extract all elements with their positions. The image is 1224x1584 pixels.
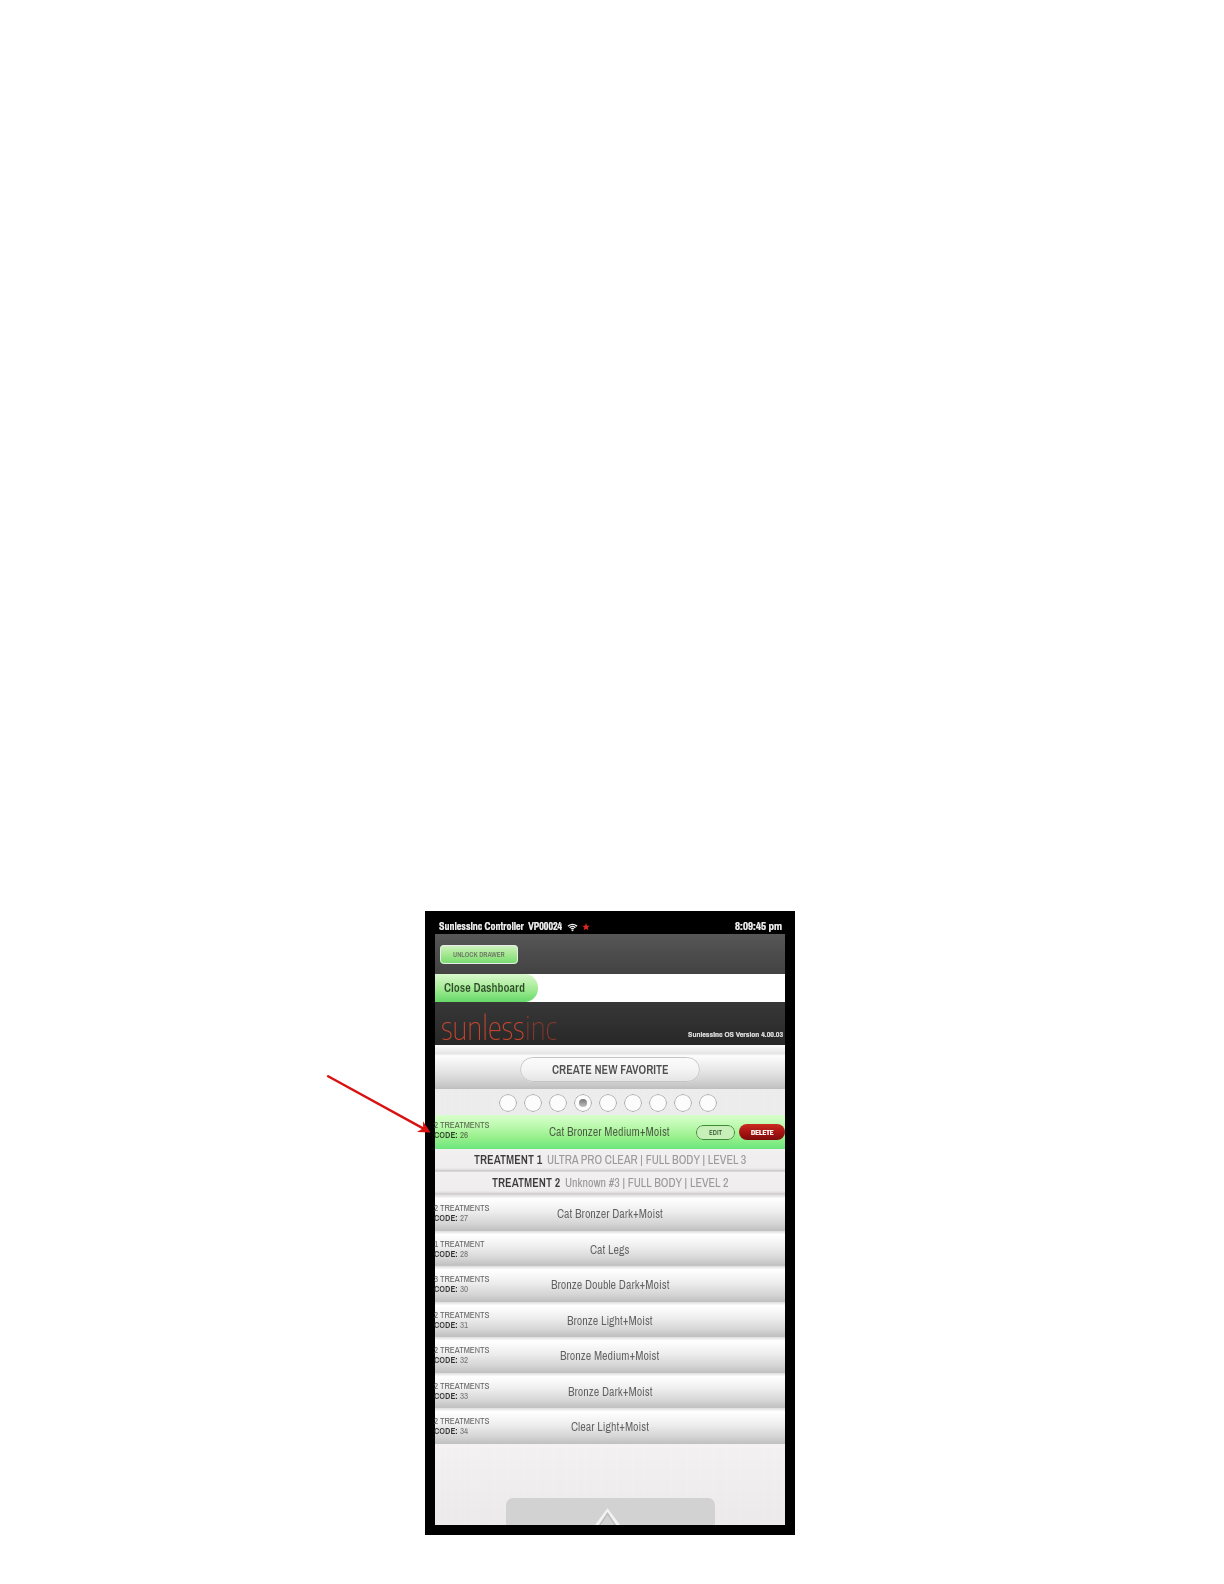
button[interactable]: CREATE NEW FAVORITE [520,1057,700,1082]
staticText: 32 [460,1354,469,1366]
staticText: CODE: [434,1248,460,1260]
button[interactable]: Slot 3 [549,1094,567,1112]
button[interactable]: Slot 7 [649,1094,667,1112]
staticText: CODE: [434,1129,460,1141]
staticText: 2 TREATMENTS [434,1202,490,1214]
staticText: 2 TREATMENTS [434,1380,490,1392]
staticText: EDIT [709,1128,723,1137]
staticText: CODE: [434,1390,460,1402]
button[interactable]: Slot 9 [699,1094,717,1112]
staticText: 30 [460,1283,469,1295]
staticText: CODE: [434,1212,460,1224]
button[interactable]: EDIT [696,1125,735,1140]
button[interactable]: 2 TREATMENTS [435,1373,785,1408]
staticText: Clear Light+Moist [571,1419,649,1435]
staticText: SunlessInc Controller VP00024 [439,920,563,933]
button[interactable]: 2 TREATMENTS [435,1115,785,1149]
staticText: DELETE [751,1128,774,1137]
staticText: Unknown #3 | FULL BODY | LEVEL 2 [565,1175,729,1191]
staticText: 2 TREATMENTS [434,1119,490,1131]
staticText: sunless [441,1007,525,1047]
button[interactable]: 2 TREATMENTS [435,1337,785,1373]
staticText: CODE: [434,1283,460,1295]
staticText: TREATMENT 2 [492,1175,561,1191]
button[interactable]: Slot 6 [624,1094,642,1112]
button[interactable]: Home [506,1498,715,1525]
staticText: Cat Bronzer Dark+Moist [557,1206,663,1222]
staticText: inc [525,1007,557,1047]
staticText: SunlessInc OS Version 4.00.03 [688,1029,784,1040]
staticText: 28 [460,1248,469,1260]
button[interactable]: TREATMENT 1 [435,1149,785,1172]
button[interactable]: Close Dashboard [435,974,538,1002]
button[interactable]: Slot 2 [524,1094,542,1112]
button[interactable]: 1 TREATMENT [435,1231,785,1266]
staticText: CREATE NEW FAVORITE [552,1062,669,1078]
staticText: Bronze Dark+Moist [568,1384,653,1400]
button[interactable]: DELETE [739,1124,785,1140]
button[interactable]: Slot 5 [599,1094,617,1112]
staticText: 26 [460,1129,469,1141]
staticText: 2 TREATMENTS [434,1309,490,1321]
staticText: 3 TREATMENTS [434,1273,490,1285]
staticText: Cat Bronzer Medium+Moist [549,1124,670,1140]
button[interactable]: Slot 8 [674,1094,692,1112]
staticText: CODE: [434,1319,460,1331]
staticText: TREATMENT 1 [474,1152,543,1168]
staticText: 31 [460,1319,469,1331]
button[interactable]: 2 TREATMENTS [435,1408,785,1444]
staticText: 34 [460,1425,469,1437]
staticText: 1 TREATMENT [434,1238,485,1250]
staticText: 8:09:45 pm [735,919,783,934]
staticText: 2 TREATMENTS [434,1415,490,1427]
other: Alert [582,923,590,931]
staticText: Bronze Light+Moist [567,1313,653,1329]
staticText: ULTRA PRO CLEAR | FULL BODY | LEVEL 3 [547,1152,747,1168]
staticText: CODE: [434,1354,460,1366]
staticText: UNLOCK DRAWER [453,950,505,959]
button[interactable]: UNLOCK DRAWER [440,945,518,964]
staticText: CODE: [434,1425,460,1437]
button[interactable]: Slot 4 [574,1094,592,1112]
button[interactable]: TREATMENT 2 [435,1172,785,1195]
button[interactable]: 3 TREATMENTS [435,1266,785,1302]
staticText: Cat Legs [590,1242,630,1258]
button[interactable]: Slot 1 [499,1094,517,1112]
staticText: Bronze Medium+Moist [560,1348,660,1364]
other: Wi-Fi [567,922,578,931]
staticText: 27 [460,1212,469,1224]
staticText: 33 [460,1390,469,1402]
button[interactable]: 2 TREATMENTS [435,1302,785,1337]
staticText: Close Dashboard [444,980,525,996]
button[interactable]: 2 TREATMENTS [435,1195,785,1231]
staticText: Bronze Double Dark+Moist [551,1277,670,1293]
staticText: 2 TREATMENTS [434,1344,490,1356]
